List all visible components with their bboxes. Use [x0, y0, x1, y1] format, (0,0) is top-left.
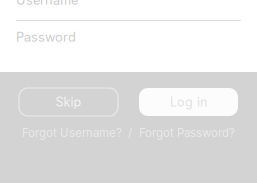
button[interactable]: Forgot Password?	[139, 126, 235, 140]
button[interactable]: Forgot Username?	[22, 126, 122, 140]
staticText: Skip	[55, 94, 81, 110]
staticText: Log in	[170, 94, 207, 110]
staticText: Username	[16, 0, 78, 8]
staticText: Forgot Password?	[139, 126, 235, 140]
staticText: Forgot Username?	[22, 126, 122, 140]
button[interactable]: Skip	[19, 88, 118, 116]
button[interactable]: Log in	[139, 88, 238, 116]
staticText: Password	[16, 29, 76, 45]
staticText: /	[128, 126, 132, 140]
